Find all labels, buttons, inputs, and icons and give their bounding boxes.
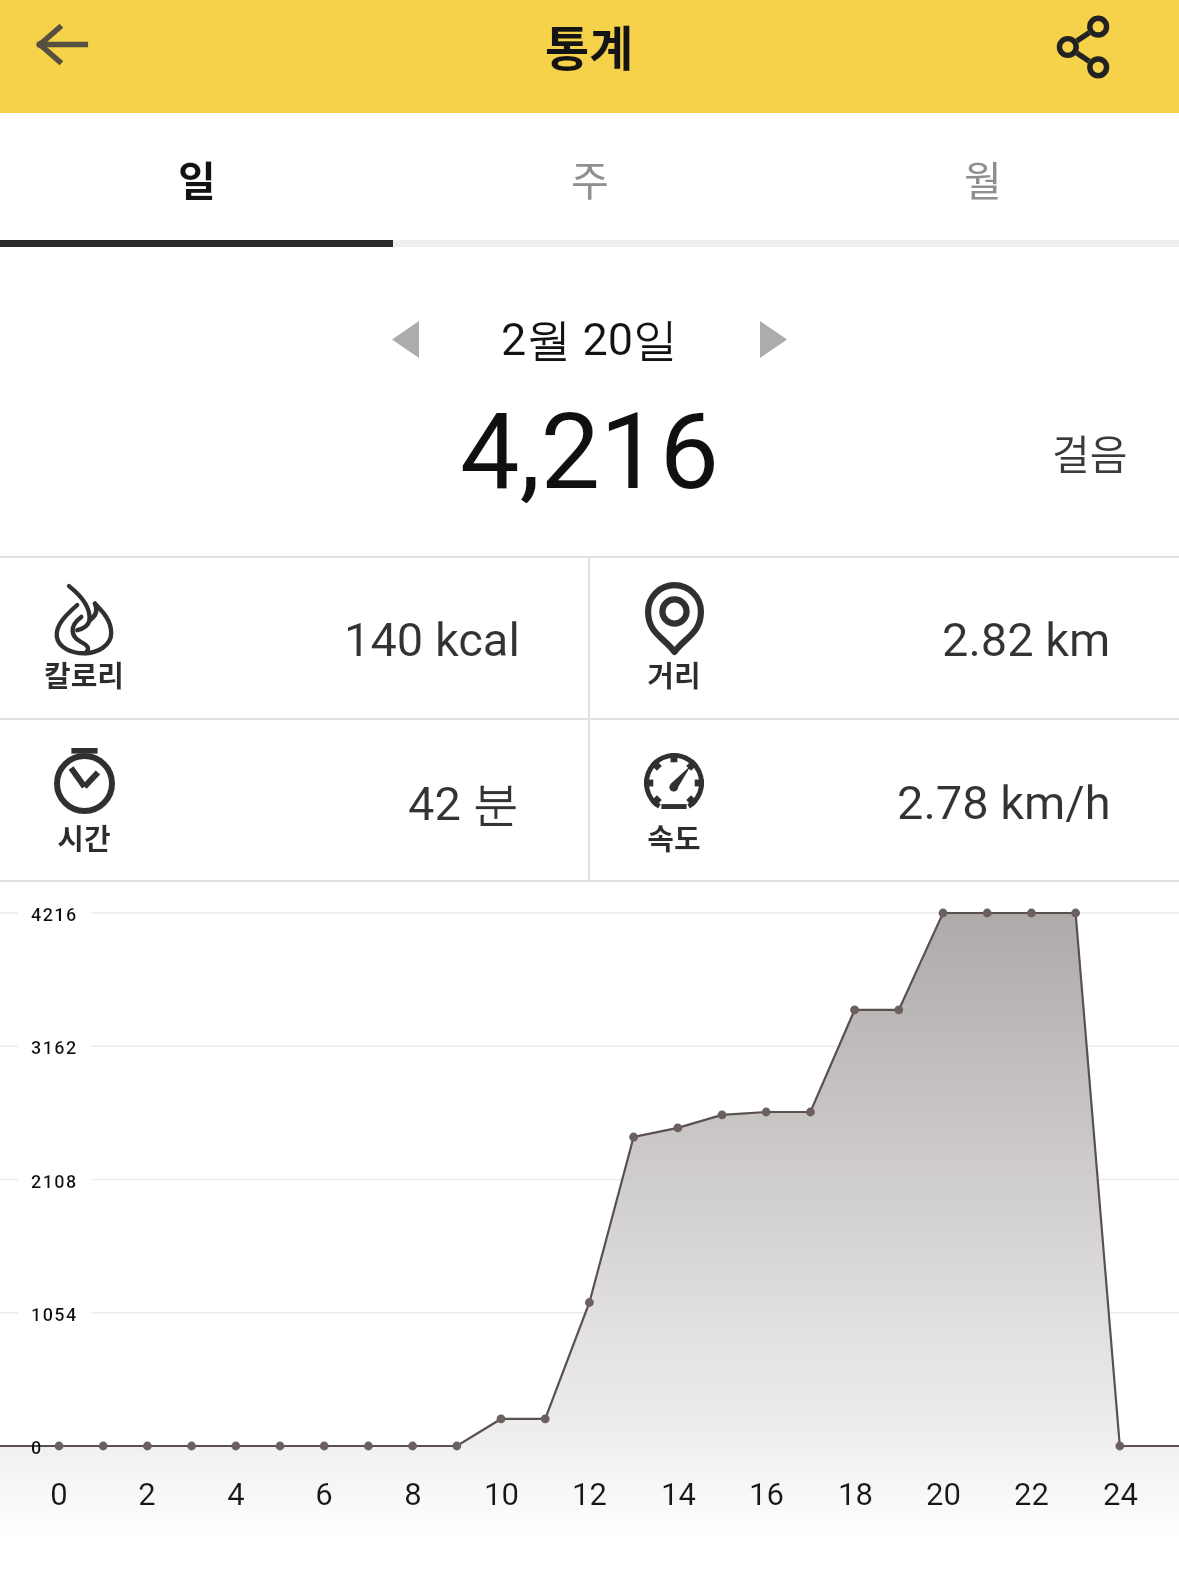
staticText: 월 [964,148,1002,207]
button[interactable]: 일 [0,113,393,240]
staticText: 1054 [31,1304,78,1325]
staticText: 속도 [590,816,758,858]
staticText: 14 [661,1476,696,1512]
staticText: 42 분 [408,775,520,834]
button[interactable]: Previous day [362,292,450,380]
staticText: 10 [484,1476,519,1512]
button[interactable]: Share [1066,0,1155,89]
staticText: 칼로리 [0,653,168,695]
staticText: 4 [227,1476,245,1512]
staticText: 2 [138,1476,156,1512]
staticText: 22 [1014,1476,1049,1512]
button[interactable]: 칼로리 [0,557,588,718]
staticText: 3162 [31,1037,78,1058]
staticText: 8 [404,1476,422,1512]
staticText: 2월 20일 [501,312,679,369]
staticText: 6 [315,1476,333,1512]
button[interactable]: 시간 [0,720,588,881]
staticText: 0 [31,1437,42,1458]
button[interactable]: 주 [393,113,786,240]
staticText: 일 [178,148,216,207]
staticText: 2108 [31,1171,78,1192]
staticText: 20 [926,1476,961,1512]
button[interactable]: 거리 [590,557,1179,718]
staticText: 시간 [0,816,168,858]
staticText: 4216 [31,904,78,925]
button[interactable]: Next day [730,292,818,380]
staticText: 140 kcal [344,612,520,667]
button[interactable]: 월 [786,113,1179,240]
staticText: 주 [571,148,609,207]
staticText: 걸음 [1052,422,1128,481]
button[interactable]: 속도 [590,720,1179,881]
staticText: 24 [1103,1476,1138,1512]
button[interactable]: Back [17,0,106,89]
staticText: 16 [749,1476,784,1512]
staticText: 18 [838,1476,873,1512]
staticText: 2.82 km [942,612,1111,667]
staticText: 거리 [590,653,758,695]
staticText: 0 [50,1476,68,1512]
staticText: 4,216 [460,390,720,514]
staticText: 12 [572,1476,607,1512]
staticText: 2.78 km/h [897,775,1111,830]
staticText: 통계 [545,10,634,80]
